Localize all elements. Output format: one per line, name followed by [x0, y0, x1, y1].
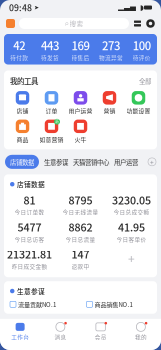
staticText: 8862	[68, 219, 92, 234]
button[interactable]: 天猫营销中心	[73, 157, 109, 166]
button[interactable]: 42	[4, 37, 35, 61]
staticText: 退款中	[71, 262, 89, 270]
button[interactable]: 店铺数据	[5, 155, 39, 169]
button[interactable]: 我的	[121, 322, 161, 341]
staticText: 会员	[95, 333, 107, 341]
staticText: 09:48	[9, 1, 32, 14]
button[interactable]: 功能设置	[124, 90, 153, 115]
staticText: 81	[23, 192, 35, 207]
button[interactable]: Add metric	[106, 249, 157, 267]
staticText: 店铺数据	[17, 179, 45, 189]
button[interactable]: 生意参谋	[44, 157, 68, 166]
staticText: 21321.81	[7, 246, 52, 262]
staticText: 443	[41, 37, 59, 53]
staticText: 店铺数据	[10, 157, 34, 166]
button[interactable]: Add module	[148, 157, 156, 167]
staticText: 待发货	[41, 53, 59, 61]
staticText: 今日客单价	[116, 235, 146, 243]
button[interactable]: Queue	[133, 19, 142, 28]
staticText: 今日订单数	[14, 208, 44, 216]
button[interactable]: Settings	[146, 19, 155, 28]
staticText: ⌕	[64, 19, 68, 27]
staticText: 全部	[139, 76, 151, 86]
button[interactable]: 全部	[139, 76, 151, 86]
staticText: 火牛	[74, 135, 86, 143]
button[interactable]: 火牛	[66, 119, 95, 143]
button[interactable]: 商品销售NO.1	[80, 300, 157, 309]
staticText: 我的	[135, 333, 147, 341]
staticText: 8795	[68, 192, 92, 207]
staticText: 147	[71, 246, 89, 262]
button[interactable]: 营销	[95, 90, 124, 115]
staticText: 天猫营销中心	[73, 157, 109, 166]
button[interactable]: 店铺	[8, 90, 37, 115]
button[interactable]: 用户运营	[66, 90, 95, 115]
button[interactable]: 169	[65, 37, 96, 61]
staticText: 169	[71, 37, 89, 53]
staticText: 新	[55, 119, 59, 125]
staticText: 昨日成交金额	[11, 262, 47, 270]
staticText: 店铺	[16, 106, 28, 115]
button[interactable]: 会员	[80, 322, 121, 341]
staticText: 用户运营	[68, 106, 92, 115]
button[interactable]: 商品	[8, 119, 37, 143]
staticText: 工作台	[11, 333, 29, 341]
staticText: 41.95	[118, 219, 145, 234]
staticText: 3230.05	[112, 192, 151, 207]
button[interactable]: 新	[37, 119, 66, 143]
staticText: 42	[13, 37, 25, 53]
button[interactable]: 用户运营	[114, 157, 138, 166]
staticText: 生意参谋	[44, 157, 68, 166]
staticText: 流量贡献NO.1	[18, 300, 56, 309]
staticText: 100	[133, 37, 151, 53]
staticText: ◗	[136, 3, 144, 12]
button[interactable]: 273	[96, 37, 126, 61]
staticText: 今日无线流量	[62, 208, 98, 216]
staticText: ▂▄▆	[118, 3, 136, 12]
staticText: 搜索	[69, 19, 83, 28]
staticText: 用户运营	[114, 157, 138, 166]
staticText: 营销	[103, 106, 115, 115]
staticText: 如意营销	[39, 135, 63, 143]
button[interactable]: 工作台	[0, 322, 40, 341]
button[interactable]: 流量贡献NO.1	[4, 300, 80, 309]
staticText: 商品	[16, 135, 28, 143]
staticText: 功能设置	[126, 106, 150, 115]
button[interactable]: Shop avatar	[6, 19, 15, 28]
staticText: 今日总流量	[65, 235, 95, 243]
staticText: ➤	[32, 4, 39, 11]
staticText: 商品销售NO.1	[94, 300, 132, 309]
button[interactable]: 443	[35, 37, 65, 61]
staticText: 生意参谋	[17, 286, 45, 296]
staticText: +	[150, 157, 154, 167]
staticText: 物流异常	[99, 53, 123, 61]
button[interactable]: 订单	[37, 90, 66, 115]
staticText: 273	[102, 37, 120, 53]
staticText: 我的工具	[10, 75, 38, 86]
staticText: 消息	[54, 333, 66, 341]
staticText: 今日总访客	[14, 235, 44, 243]
staticText: 5477	[17, 219, 41, 234]
staticText: 待付款	[10, 53, 28, 61]
staticText: +	[128, 249, 135, 267]
staticText: 订单	[45, 106, 57, 115]
staticText: 待售后	[71, 53, 89, 61]
button[interactable]: 消息	[40, 322, 80, 341]
button[interactable]: ⌕	[19, 18, 129, 29]
staticText: 今日总成交额	[113, 208, 149, 216]
staticText: 待评价	[133, 53, 151, 61]
button[interactable]: 100	[126, 37, 157, 61]
